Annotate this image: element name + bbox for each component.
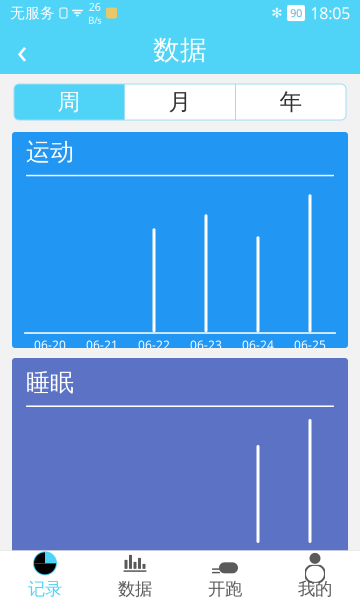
staticText: 数据 <box>153 34 207 66</box>
staticText: 月 <box>168 88 191 116</box>
button[interactable]: 数据 <box>90 551 180 600</box>
staticText: 运动 <box>26 137 74 167</box>
staticText: ✻ <box>271 5 282 20</box>
button[interactable]: 我的 <box>270 551 360 600</box>
button[interactable]: 年 <box>236 84 346 120</box>
staticText: 06-22 <box>138 337 170 353</box>
button[interactable]: 月 <box>125 84 235 120</box>
staticText: 06-24 <box>242 337 274 353</box>
staticText: 数据 <box>118 578 152 600</box>
staticText: 06-21 <box>86 337 118 353</box>
staticText: ‹ <box>16 27 27 73</box>
staticText: B/s <box>88 14 101 26</box>
staticText: 06-25 <box>294 337 326 353</box>
staticText: 开跑 <box>208 578 242 600</box>
staticText: 06-20 <box>34 337 66 353</box>
staticText: 90 <box>290 6 302 20</box>
staticText: 记录 <box>28 578 62 600</box>
staticText: 我的 <box>298 578 332 600</box>
staticText: 06-23 <box>190 337 222 353</box>
staticText: 年 <box>279 88 302 116</box>
button[interactable]: 开跑 <box>180 551 270 600</box>
staticText: 无服务 <box>10 4 55 22</box>
staticText: 26 <box>88 0 100 14</box>
staticText: 睡眠 <box>26 368 74 397</box>
button[interactable]: 返回 <box>0 26 44 74</box>
button[interactable]: 周 <box>14 84 124 120</box>
staticText: 18:05 <box>310 2 350 24</box>
button[interactable]: 记录 <box>0 551 90 600</box>
staticText: 周 <box>57 88 80 116</box>
